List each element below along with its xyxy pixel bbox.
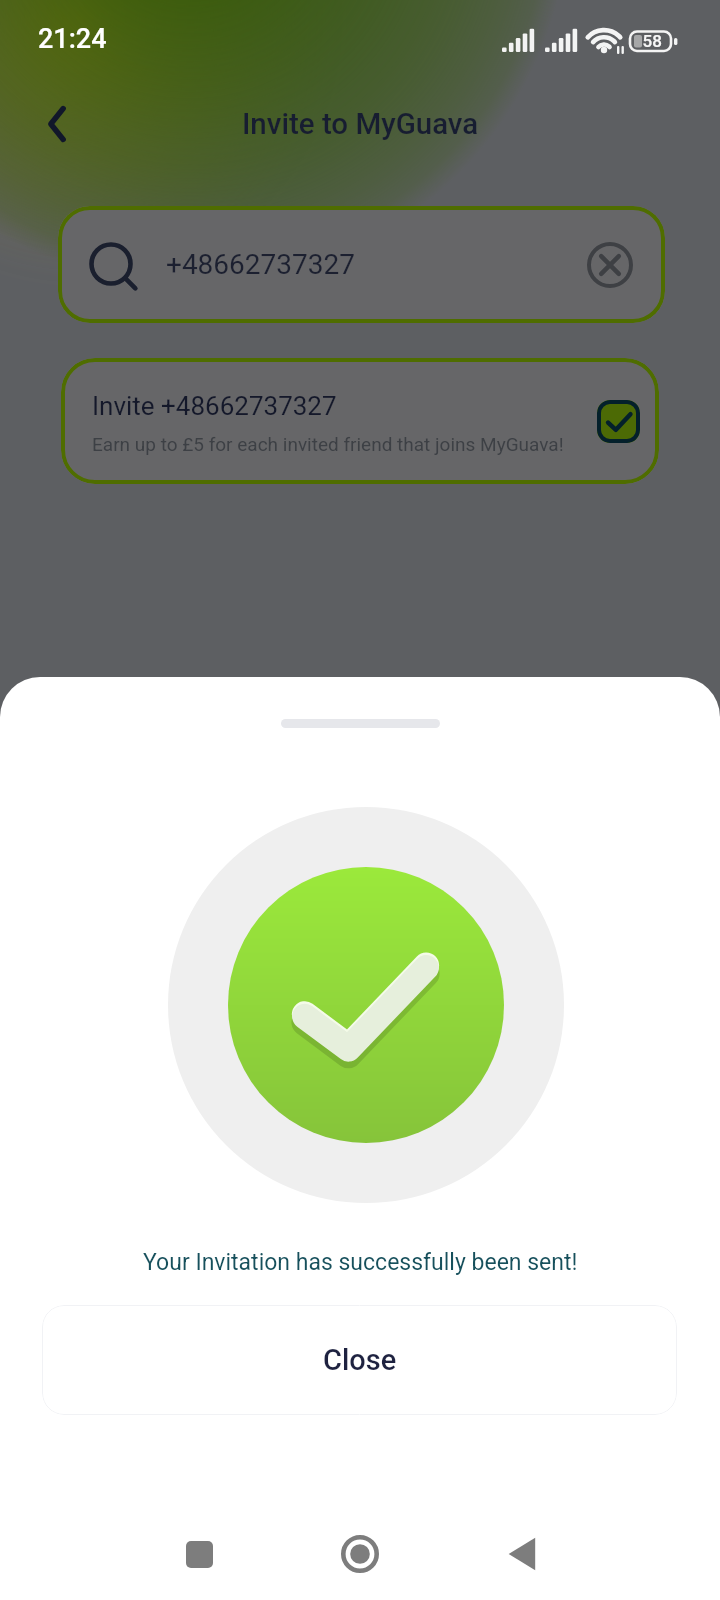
button[interactable]: Recent apps (160, 1515, 238, 1593)
staticText: Invite +48662737327 (92, 391, 337, 421)
button[interactable]: Selected (597, 400, 640, 443)
staticText: 21:24 (38, 23, 107, 55)
staticText: Close (323, 1343, 397, 1377)
button[interactable]: Clear text (581, 236, 639, 294)
button[interactable]: Invite +48662737327 (61, 358, 659, 484)
button[interactable]: Close (42, 1305, 677, 1415)
staticText: Your Invitation has successfully been se… (143, 1249, 578, 1276)
staticText: Invite to MyGuava (242, 107, 479, 142)
button[interactable]: +48662737327 (58, 206, 665, 323)
button[interactable]: Home (321, 1515, 399, 1593)
button[interactable]: Back (486, 1515, 564, 1593)
staticText: +48662737327 (166, 248, 355, 281)
staticText: Earn up to £5 for each invited friend th… (92, 433, 564, 455)
button[interactable]: Back (24, 91, 90, 157)
